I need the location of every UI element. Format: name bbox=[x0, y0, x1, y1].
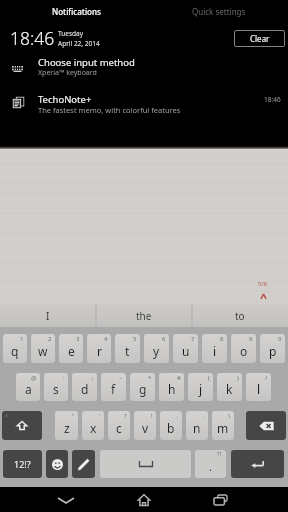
button[interactable]: to bbox=[192, 304, 288, 327]
button[interactable]: ) bbox=[217, 373, 242, 401]
staticText: ~ bbox=[119, 374, 123, 382]
staticText: ! bbox=[151, 412, 153, 420]
button[interactable]: # bbox=[159, 373, 184, 401]
button[interactable]: Clear bbox=[234, 30, 285, 47]
button[interactable]: Back bbox=[48, 487, 84, 512]
other: Keyboard bbox=[12, 66, 23, 72]
button[interactable]: Notifications bbox=[52, 6, 101, 17]
staticText: k bbox=[226, 381, 233, 397]
staticText: Xperia™ keyboard bbox=[38, 68, 97, 78]
staticText: 6 bbox=[162, 335, 166, 343]
staticText: " bbox=[72, 412, 75, 420]
staticText: TechoNote+ bbox=[38, 93, 92, 106]
button[interactable]: 4 bbox=[87, 334, 111, 363]
staticText: h bbox=[168, 381, 176, 397]
staticText: \ bbox=[228, 412, 231, 420]
staticText: * bbox=[148, 374, 152, 382]
button[interactable]: ?! bbox=[195, 450, 226, 478]
button[interactable]: ( bbox=[188, 373, 213, 401]
staticText: p bbox=[269, 343, 277, 359]
staticText: z bbox=[64, 420, 70, 436]
button[interactable]: @ bbox=[16, 373, 40, 401]
button[interactable]: / bbox=[246, 373, 271, 401]
button[interactable]: : bbox=[44, 373, 68, 401]
other: Note bbox=[12, 96, 25, 109]
button[interactable]: ~ bbox=[101, 373, 126, 401]
button[interactable]: Keyboard bbox=[0, 53, 288, 89]
staticText: o bbox=[240, 343, 248, 359]
staticText: l bbox=[257, 381, 261, 397]
staticText: 0 bbox=[278, 335, 282, 343]
staticText: : bbox=[63, 374, 65, 382]
staticText: c bbox=[116, 420, 122, 436]
staticText: d bbox=[81, 381, 89, 397]
button[interactable]: " bbox=[55, 411, 78, 440]
button[interactable]: Home bbox=[126, 487, 162, 512]
button[interactable]: \ bbox=[212, 411, 234, 440]
staticText: ? bbox=[124, 412, 127, 420]
button[interactable]: 2 bbox=[31, 334, 55, 363]
button[interactable]: , bbox=[160, 411, 182, 440]
staticText: v bbox=[142, 420, 149, 436]
button[interactable]: Space bbox=[100, 450, 191, 478]
staticText: 7 bbox=[191, 335, 195, 343]
button[interactable]: Enter bbox=[231, 450, 284, 478]
staticText: @ bbox=[31, 374, 37, 382]
button[interactable]: 3 bbox=[59, 334, 83, 363]
button[interactable]: . bbox=[186, 411, 208, 440]
button[interactable]: 0 bbox=[260, 334, 285, 363]
staticText: m bbox=[217, 420, 229, 436]
button[interactable]: ; bbox=[72, 373, 97, 401]
button[interactable]: ? bbox=[108, 411, 130, 440]
staticText: 3 bbox=[76, 335, 80, 343]
staticText: I bbox=[46, 309, 50, 323]
staticText: to bbox=[235, 309, 245, 323]
staticText: t bbox=[125, 343, 130, 359]
staticText: n bbox=[193, 420, 201, 436]
staticText: . bbox=[209, 459, 212, 474]
button[interactable]: Handwriting bbox=[72, 450, 95, 478]
button[interactable]: 6 bbox=[144, 334, 169, 363]
staticText: f bbox=[111, 381, 116, 397]
button[interactable]: Backspace bbox=[246, 411, 286, 440]
button[interactable]: I bbox=[0, 304, 96, 327]
button[interactable]: 8 bbox=[202, 334, 227, 363]
staticText: 5/6 bbox=[258, 280, 268, 288]
staticText: 9 bbox=[249, 335, 253, 343]
staticText: ' bbox=[99, 412, 101, 420]
button[interactable]: ! bbox=[134, 411, 156, 440]
button[interactable]: 5 bbox=[115, 334, 140, 363]
button[interactable]: 7 bbox=[173, 334, 198, 363]
staticText: 12!? bbox=[14, 458, 31, 470]
staticText: e bbox=[68, 343, 75, 359]
staticText: Choose input method bbox=[38, 56, 135, 69]
staticText: 18:46 bbox=[264, 95, 281, 104]
staticText: ; bbox=[92, 374, 94, 382]
button[interactable]: ' bbox=[82, 411, 104, 440]
button[interactable]: 9 bbox=[231, 334, 256, 363]
staticText: w bbox=[38, 343, 48, 359]
staticText: 2 bbox=[48, 335, 52, 343]
staticText: 18:46 bbox=[10, 26, 55, 50]
button[interactable]: 1 bbox=[3, 334, 27, 363]
button[interactable]: the bbox=[96, 304, 192, 327]
staticText: 5 bbox=[133, 335, 137, 343]
button[interactable]: Emoji bbox=[46, 450, 68, 478]
button[interactable]: Quick settings bbox=[192, 6, 246, 17]
staticText: , bbox=[177, 412, 179, 420]
button[interactable]: Numbers bbox=[3, 450, 42, 478]
staticText: April 22, 2014 bbox=[58, 39, 100, 48]
button[interactable]: Recents bbox=[202, 487, 238, 512]
button[interactable]: * bbox=[130, 373, 155, 401]
button[interactable]: Note bbox=[0, 89, 288, 125]
staticText: ?! bbox=[217, 450, 222, 458]
button[interactable]: Shift bbox=[2, 411, 42, 440]
staticText: r bbox=[97, 343, 102, 359]
staticText: 1 bbox=[20, 335, 24, 343]
staticText: 4 bbox=[104, 335, 108, 343]
staticText: q bbox=[11, 343, 19, 359]
staticText: Clear bbox=[250, 33, 270, 44]
staticText: a bbox=[25, 381, 32, 397]
staticText: / bbox=[265, 374, 268, 382]
staticText: # bbox=[177, 374, 181, 382]
